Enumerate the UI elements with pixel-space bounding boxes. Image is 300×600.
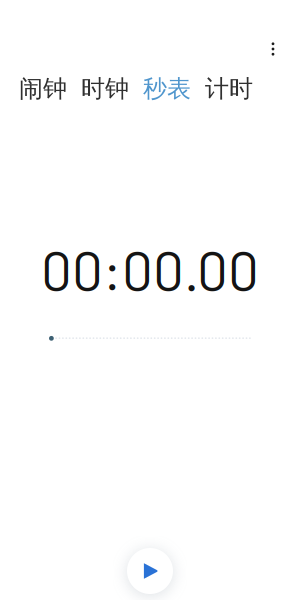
button[interactable]: Start stopwatch — [127, 548, 173, 594]
button[interactable]: 时钟 — [81, 74, 129, 103]
button[interactable]: More options — [253, 29, 293, 69]
staticText: 时钟 — [81, 74, 129, 103]
staticText: 秒表 — [143, 74, 191, 103]
staticText: 闹钟 — [19, 74, 67, 103]
button[interactable]: 闹钟 — [19, 74, 67, 103]
button[interactable]: 计时 — [205, 74, 253, 103]
staticText: 00:00.00 — [41, 236, 259, 302]
staticText: 计时 — [205, 74, 253, 103]
button[interactable]: 秒表 — [143, 74, 191, 103]
